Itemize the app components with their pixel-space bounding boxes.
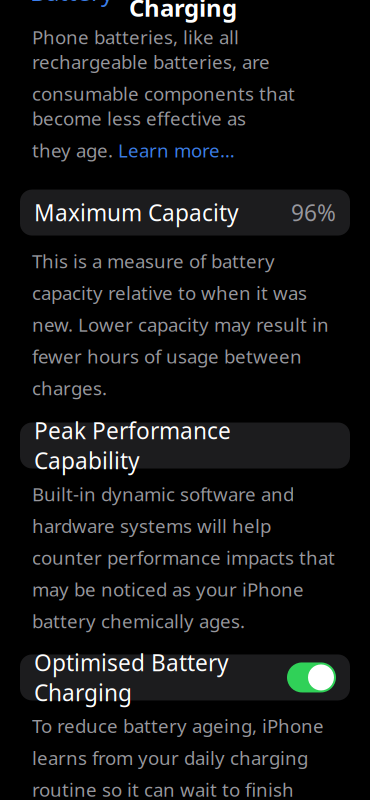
button[interactable]: Optimised Battery Charging: [0, 654, 370, 700]
staticText: Battery: [30, 0, 113, 8]
button[interactable]: Maximum Capacity: [0, 189, 370, 235]
button[interactable]: Battery: [12, 0, 115, 14]
staticText: Battery Health & Charging: [129, 0, 327, 23]
staticText: Built-in dynamic software and hardware s…: [32, 481, 335, 633]
staticText: To reduce battery ageing, iPhone learns …: [32, 713, 329, 800]
staticText: Optimised Battery Charging: [34, 647, 229, 707]
staticText: Phone batteries, like all rechargeable b…: [32, 25, 270, 74]
button[interactable]: Learn more…: [118, 138, 235, 163]
staticText: consumable components that become less e…: [32, 81, 295, 131]
staticText: Peak Performance Capability: [34, 415, 231, 476]
staticText: Maximum Capacity: [34, 197, 239, 228]
staticText: Learn more…: [118, 138, 235, 163]
button[interactable]: Peak Performance Capability: [0, 422, 370, 468]
staticText: they age.: [32, 138, 118, 163]
staticText: This is a measure of battery capacity re…: [32, 248, 329, 400]
staticText: 96%: [291, 197, 336, 228]
